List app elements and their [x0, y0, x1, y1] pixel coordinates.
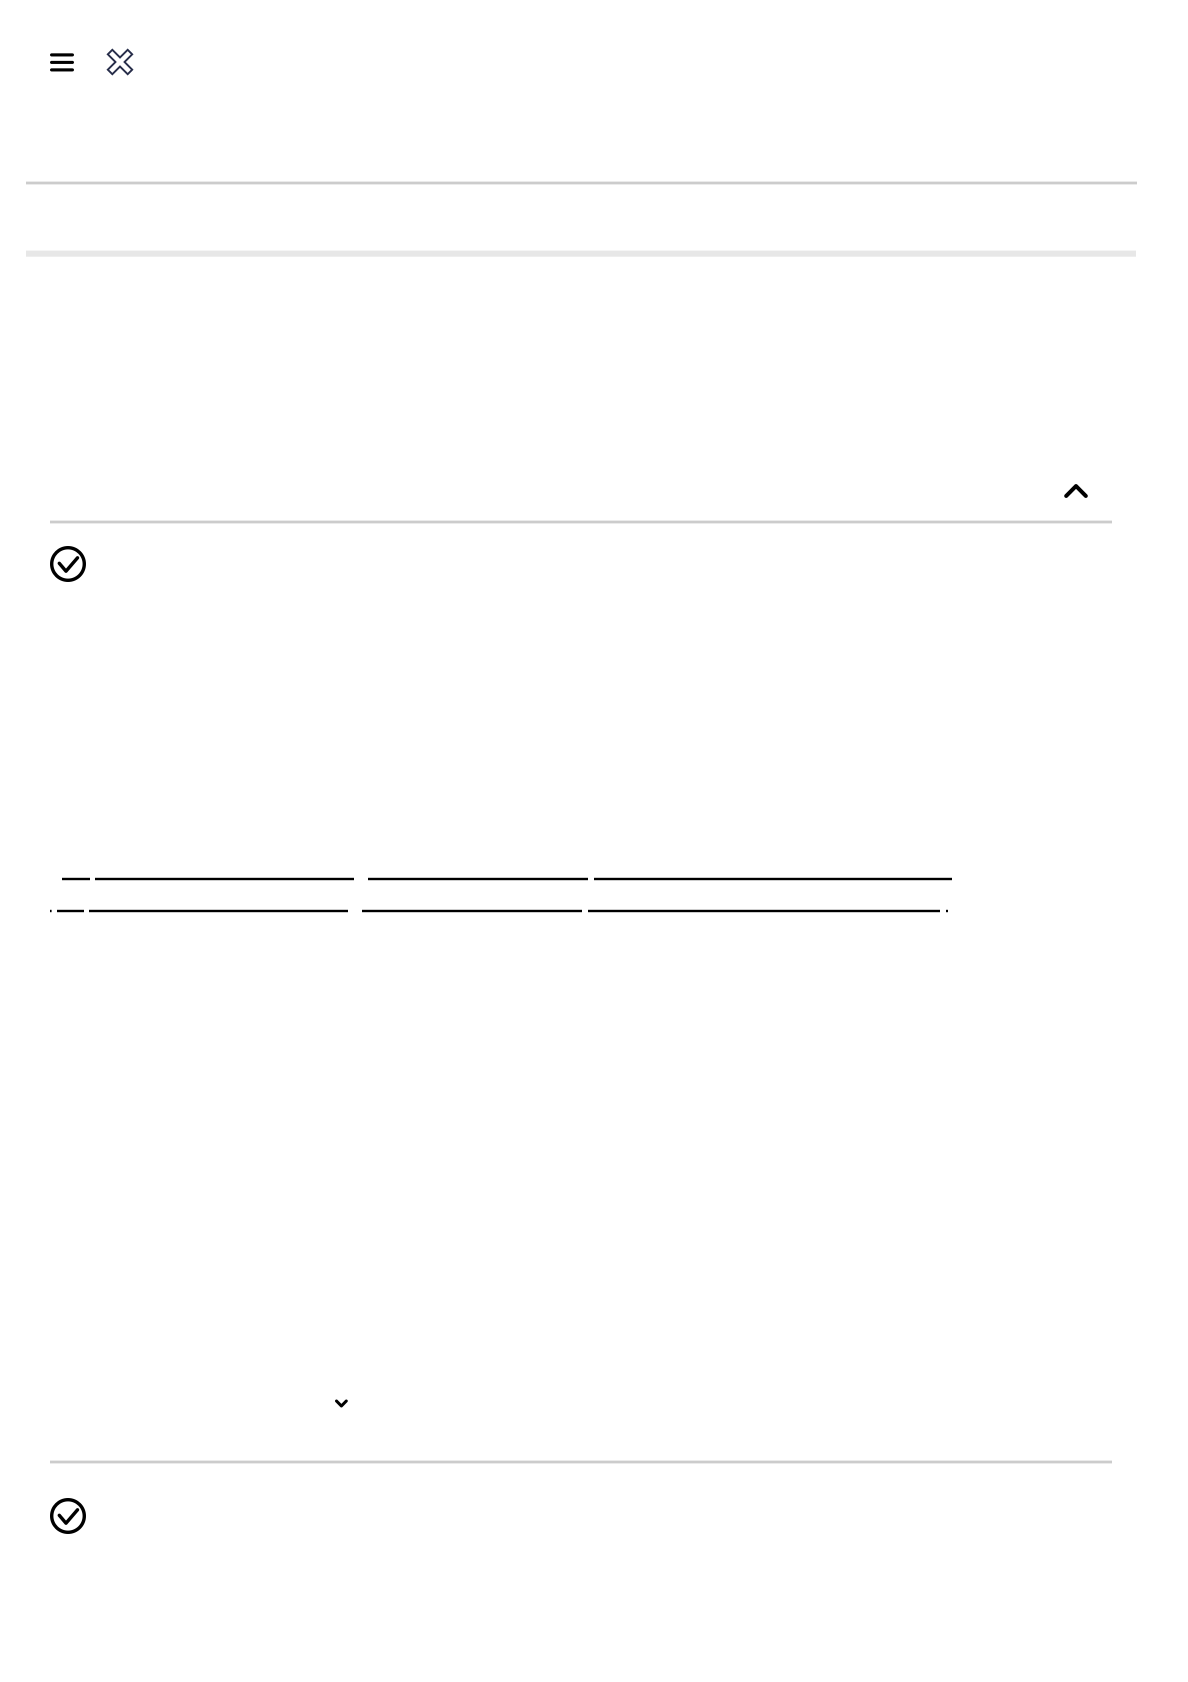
- button[interactable]: Link 3: [368, 856, 588, 880]
- button[interactable]: Link 8: [588, 888, 940, 912]
- button[interactable]: Close: [96, 37, 144, 87]
- button[interactable]: Menu: [34, 37, 90, 88]
- button[interactable]: Link 6: [89, 888, 348, 912]
- button[interactable]: Link 1: [62, 856, 90, 880]
- button[interactable]: Link 2: [95, 856, 354, 880]
- button[interactable]: Link 4: [594, 856, 952, 880]
- button[interactable]: Collapse section: [1040, 464, 1112, 518]
- button[interactable]: Link 7: [362, 888, 582, 912]
- button[interactable]: Expand section: [311, 1379, 371, 1427]
- button[interactable]: Link 5: [57, 888, 84, 912]
